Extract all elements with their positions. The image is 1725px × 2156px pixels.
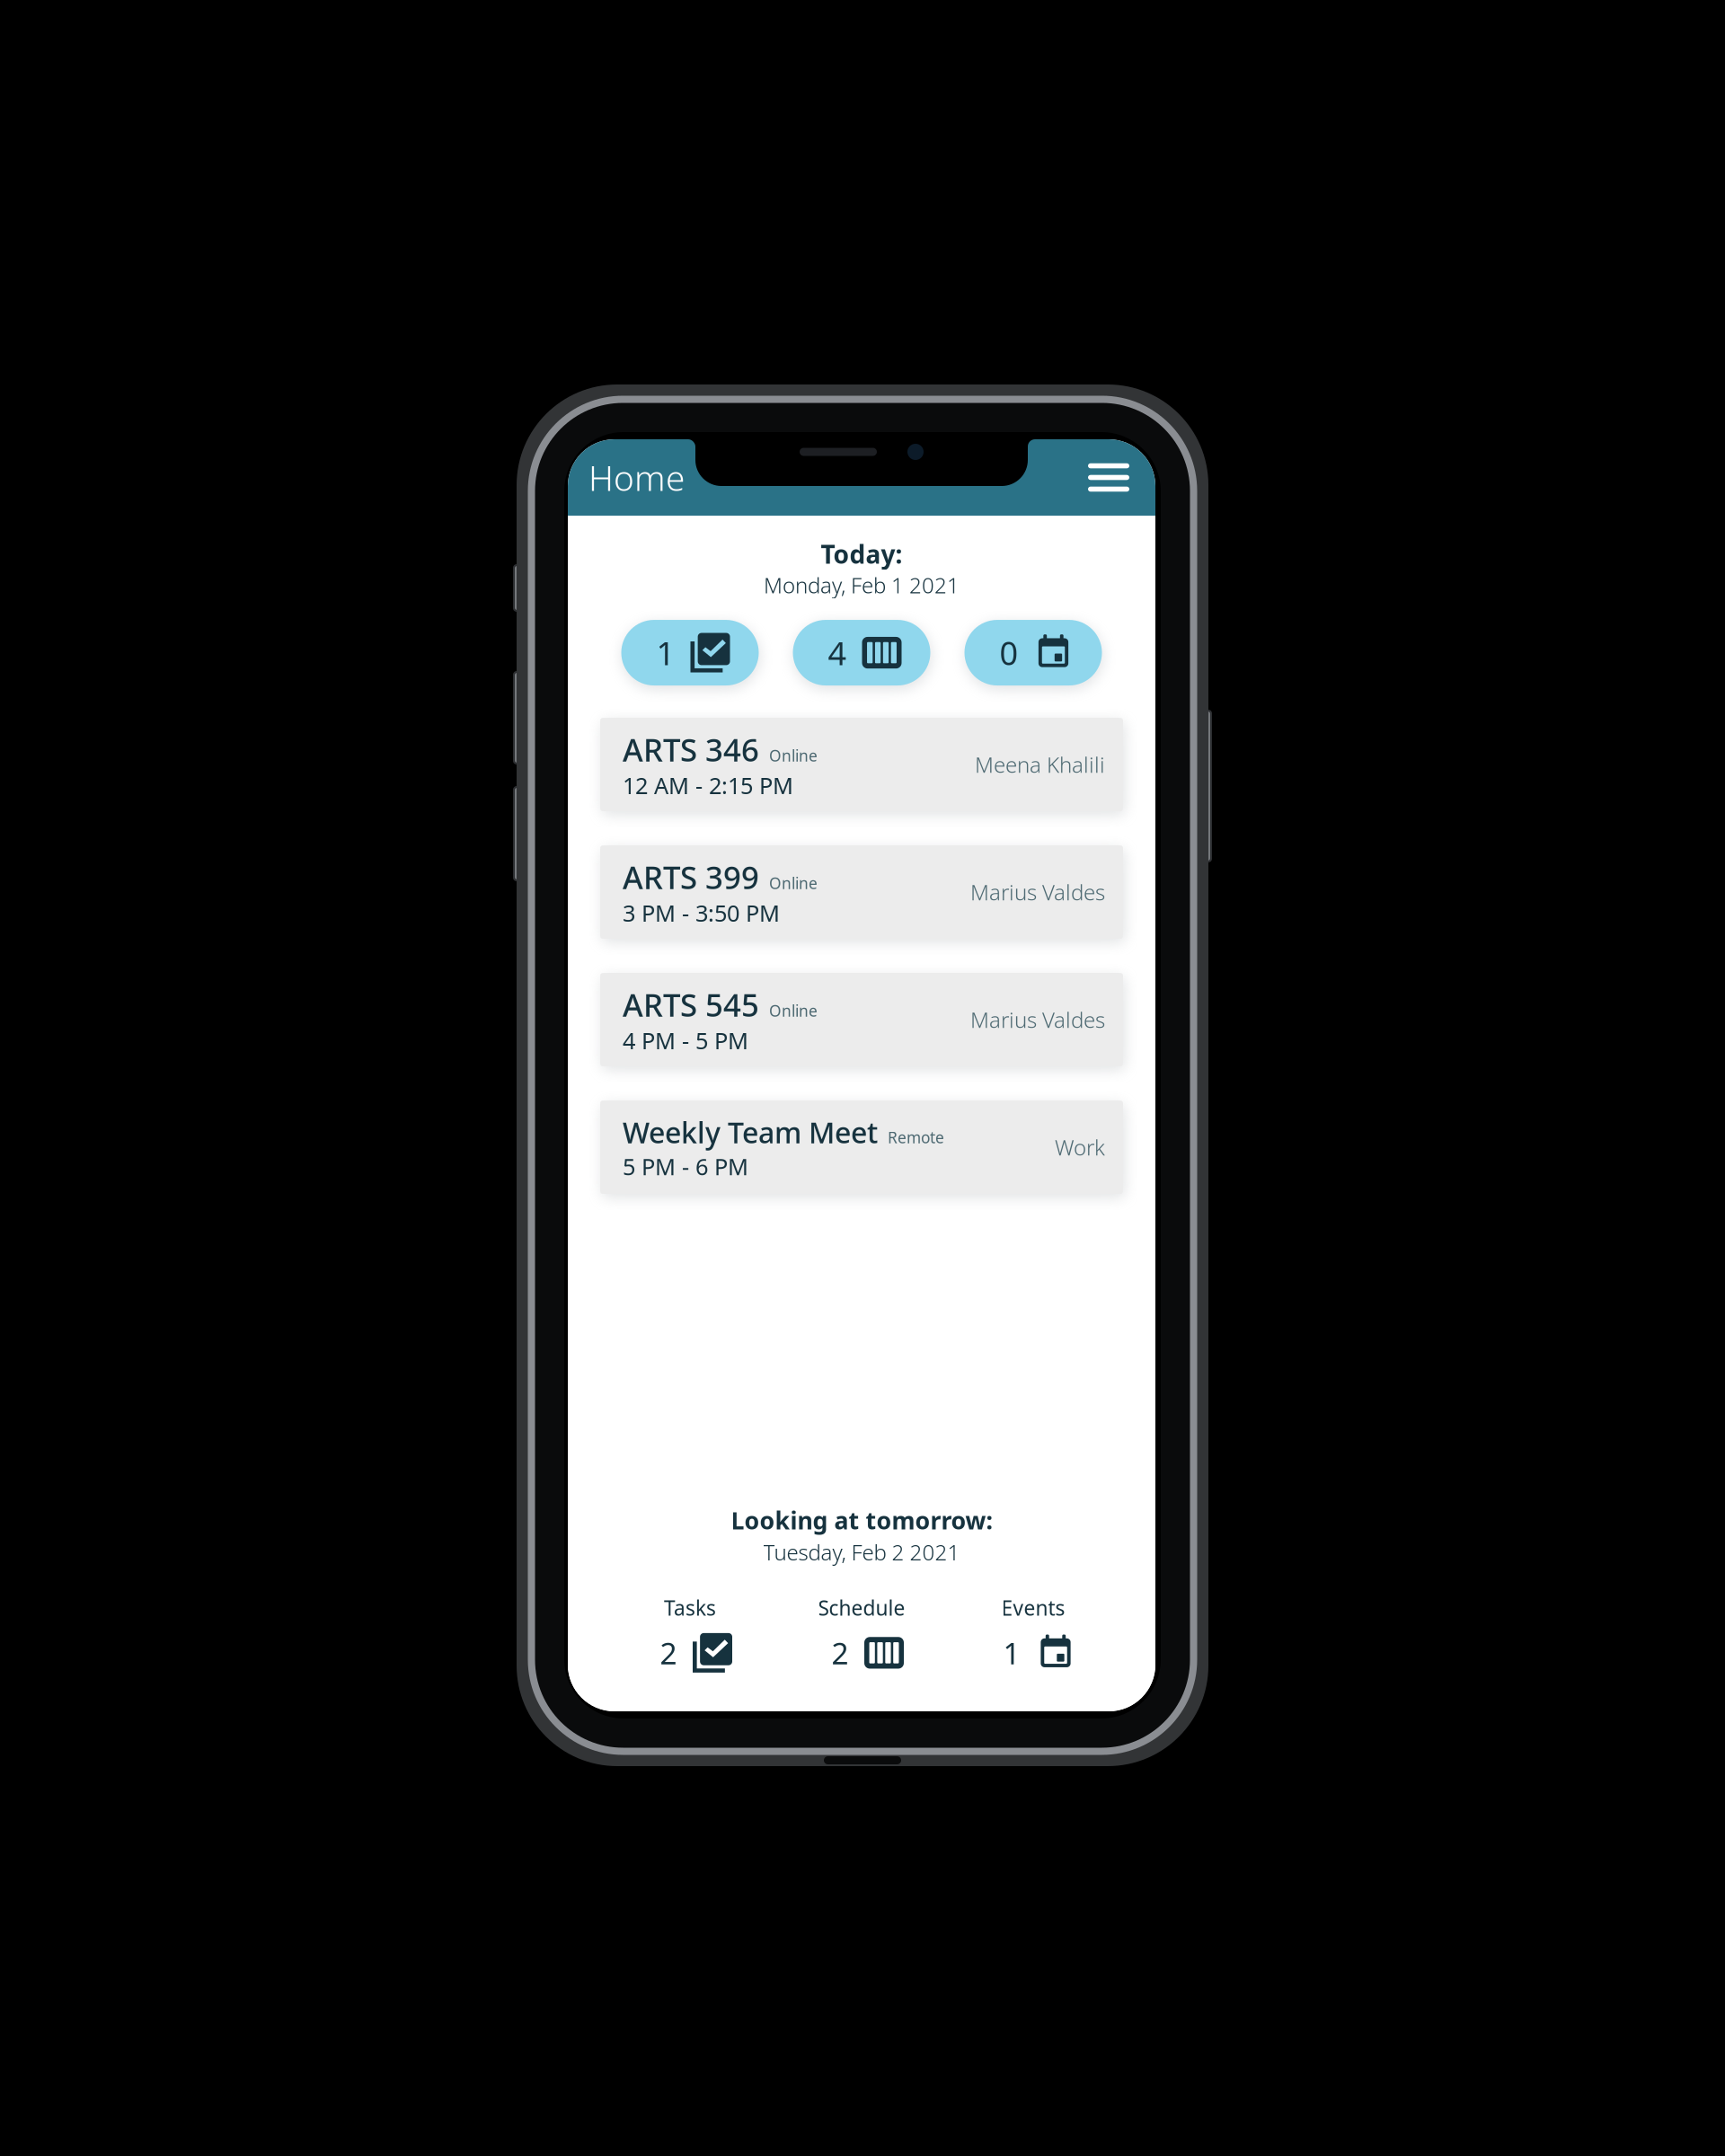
staticText: Remote	[888, 1127, 944, 1148]
button[interactable]: ARTS 346	[600, 718, 1123, 811]
button[interactable]: Events	[947, 1594, 1119, 1673]
staticText: Tuesday, Feb 2 2021	[763, 1538, 960, 1566]
staticText: ARTS 346	[623, 729, 759, 770]
staticText: ARTS 399	[623, 856, 759, 898]
staticText: Tasks	[664, 1594, 716, 1621]
staticText: 2	[660, 1633, 677, 1673]
button[interactable]: Menu	[1075, 451, 1143, 504]
staticText: Today:	[821, 537, 902, 571]
staticText: Marius Valdes	[970, 1005, 1105, 1034]
staticText: Work	[1055, 1133, 1105, 1162]
button[interactable]: 0	[964, 620, 1102, 686]
staticText: 4 PM - 5 PM	[623, 1025, 748, 1055]
staticText: 12 AM - 2:15 PM	[623, 770, 793, 800]
button[interactable]: Tasks	[604, 1594, 776, 1673]
button[interactable]: Schedule	[776, 1594, 947, 1673]
staticText: 0	[1000, 631, 1018, 674]
button[interactable]: ARTS 545	[600, 973, 1123, 1066]
button[interactable]: ARTS 399	[600, 845, 1123, 939]
staticText: Marius Valdes	[970, 878, 1105, 906]
staticText: Looking at tomorrow:	[731, 1504, 992, 1536]
staticText: Events	[1001, 1594, 1065, 1621]
staticText: Monday, Feb 1 2021	[764, 571, 960, 599]
button[interactable]: 1	[621, 620, 759, 686]
staticText: 3 PM - 3:50 PM	[623, 898, 780, 928]
staticText: Weekly Team Meet	[623, 1113, 878, 1151]
staticText: Online	[769, 873, 818, 893]
staticText: 1	[1003, 1633, 1020, 1673]
staticText: Online	[769, 1000, 818, 1021]
staticText: 2	[832, 1633, 849, 1673]
staticText: Schedule	[818, 1594, 905, 1621]
button[interactable]: 4	[793, 620, 930, 686]
staticText: Meena Khalili	[975, 750, 1105, 779]
staticText: Home	[588, 454, 685, 500]
button[interactable]: Weekly Team Meet	[600, 1101, 1123, 1194]
staticText: ARTS 545	[623, 984, 759, 1025]
staticText: 1	[656, 631, 675, 674]
staticText: Online	[769, 745, 818, 766]
staticText: 5 PM - 6 PM	[623, 1151, 748, 1181]
staticText: 4	[828, 631, 847, 674]
